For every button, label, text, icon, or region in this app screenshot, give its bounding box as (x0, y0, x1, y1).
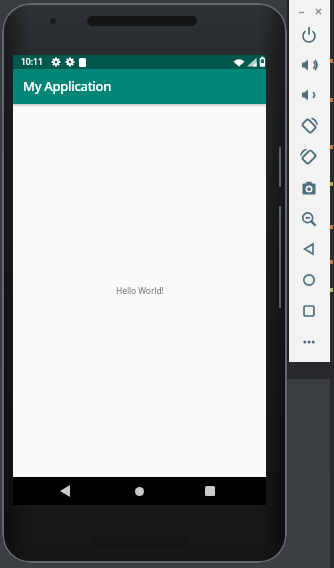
button[interactable] (297, 23, 321, 47)
button[interactable] (297, 83, 321, 107)
staticText: 10:11 (21, 56, 43, 68)
button[interactable] (297, 114, 321, 138)
button[interactable] (297, 237, 321, 261)
button[interactable] (297, 145, 321, 169)
button[interactable] (312, 5, 324, 17)
button[interactable] (297, 268, 321, 292)
staticText: Hello World! (116, 285, 164, 297)
button[interactable] (297, 177, 321, 201)
button[interactable] (197, 478, 223, 504)
staticText: My Application (23, 77, 112, 95)
button[interactable] (297, 206, 321, 230)
button[interactable] (297, 330, 321, 354)
button[interactable] (126, 478, 152, 504)
button[interactable] (295, 5, 307, 17)
button[interactable]: My Application (13, 69, 266, 104)
button[interactable] (52, 478, 78, 504)
button[interactable] (297, 299, 321, 323)
button[interactable] (297, 53, 321, 77)
